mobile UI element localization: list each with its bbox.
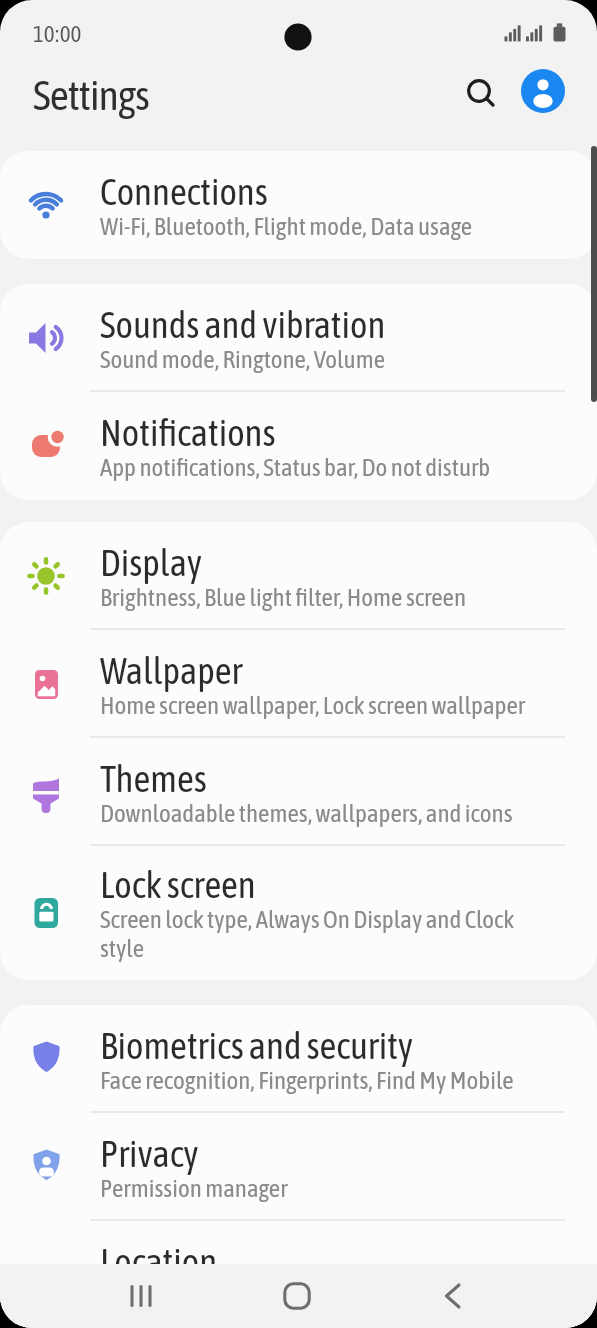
staticText: Settings (33, 71, 149, 119)
staticText: Wi-Fi, Bluetooth, Flight mode, Data usag… (100, 212, 473, 241)
staticText: Sound mode, Ringtone, Volume (100, 345, 386, 374)
staticText: Sounds and vibration (100, 303, 386, 345)
button[interactable]: Biometrics and security (0, 1005, 597, 1113)
staticText: App notifications, Status bar, Do not di… (100, 453, 491, 482)
staticText: Lock screen (100, 863, 256, 905)
button[interactable] (459, 72, 503, 116)
button[interactable]: Connections (0, 151, 597, 259)
button[interactable]: Wallpaper (0, 630, 597, 738)
button[interactable] (421, 1264, 485, 1328)
button[interactable]: Display (0, 522, 597, 630)
staticText: Connections (100, 170, 268, 212)
staticText: Privacy (100, 1132, 199, 1174)
staticText: Themes (100, 757, 207, 799)
staticText: Notifications (100, 411, 276, 453)
button[interactable] (521, 69, 565, 113)
staticText: Downloadable themes, wallpapers, and ico… (100, 799, 513, 828)
staticText: Location requests (100, 1282, 262, 1311)
button[interactable] (109, 1264, 173, 1328)
staticText: Wallpaper (100, 649, 243, 691)
button[interactable]: Privacy (0, 1113, 597, 1221)
staticText: 10:00 (33, 21, 82, 47)
button[interactable]: Lock screen (0, 846, 597, 980)
staticText: Face recognition, Fingerprints, Find My … (100, 1066, 514, 1095)
staticText: Display (100, 541, 203, 583)
button[interactable]: Notifications (0, 392, 597, 500)
staticText: Biometrics and security (100, 1024, 414, 1066)
button[interactable]: Location (0, 1221, 597, 1328)
button[interactable]: Themes (0, 738, 597, 846)
staticText: Screen lock type, Always On Display and … (100, 905, 515, 963)
staticText: Brightness, Blue light filter, Home scre… (100, 583, 467, 612)
button[interactable]: Sounds and vibration (0, 284, 597, 392)
staticText: Permission manager (100, 1174, 288, 1203)
button[interactable] (265, 1264, 329, 1328)
staticText: Location (100, 1240, 218, 1282)
staticText: Home screen wallpaper, Lock screen wallp… (100, 691, 526, 720)
